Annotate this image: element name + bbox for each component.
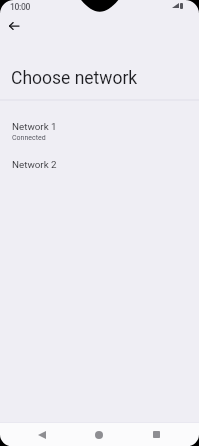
- staticText: Connected: [12, 134, 46, 142]
- button[interactable]: Home: [87, 423, 111, 446]
- staticText: Choose network: [11, 68, 138, 89]
- staticText: Network 1: [12, 121, 57, 132]
- button[interactable]: Network 1: [0, 110, 199, 148]
- button[interactable]: Back: [30, 423, 54, 446]
- button[interactable]: Network 2: [0, 148, 199, 186]
- staticText: 10:00: [10, 2, 31, 12]
- button[interactable]: Navigate up: [2, 14, 26, 38]
- staticText: Network 2: [12, 159, 57, 170]
- button[interactable]: Recent apps: [144, 423, 168, 446]
